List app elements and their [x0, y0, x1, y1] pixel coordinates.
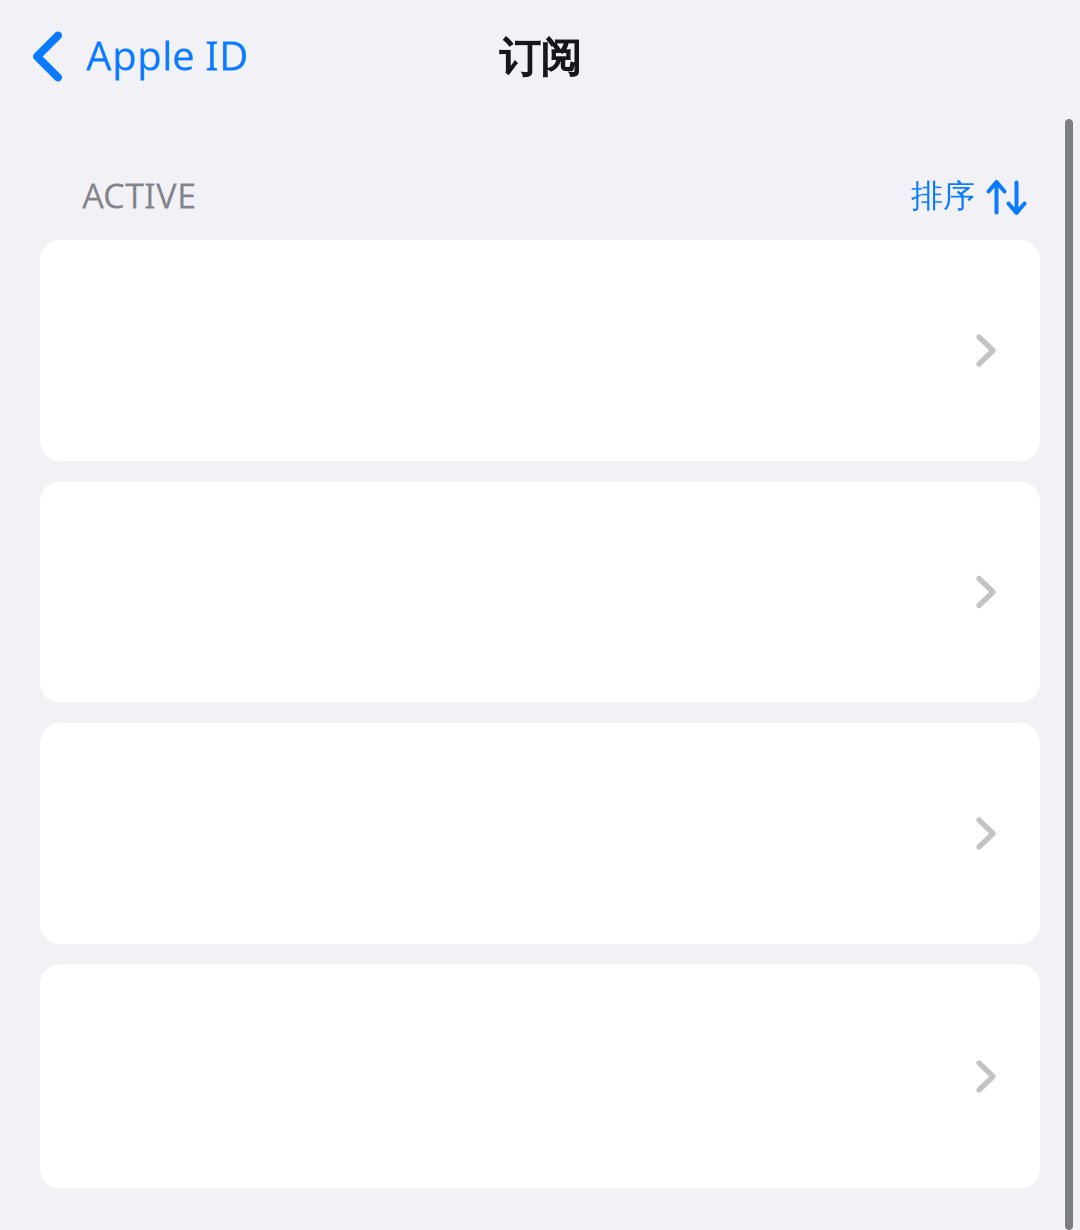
staticText: 排序: [911, 176, 975, 216]
staticText: 订阅: [499, 33, 581, 83]
button[interactable]: Apple ID: [0, 0, 270, 110]
staticText: ACTIVE: [82, 172, 196, 218]
staticText: Apple ID: [86, 28, 248, 81]
button[interactable]: 排序 Sort: [911, 162, 1027, 228]
